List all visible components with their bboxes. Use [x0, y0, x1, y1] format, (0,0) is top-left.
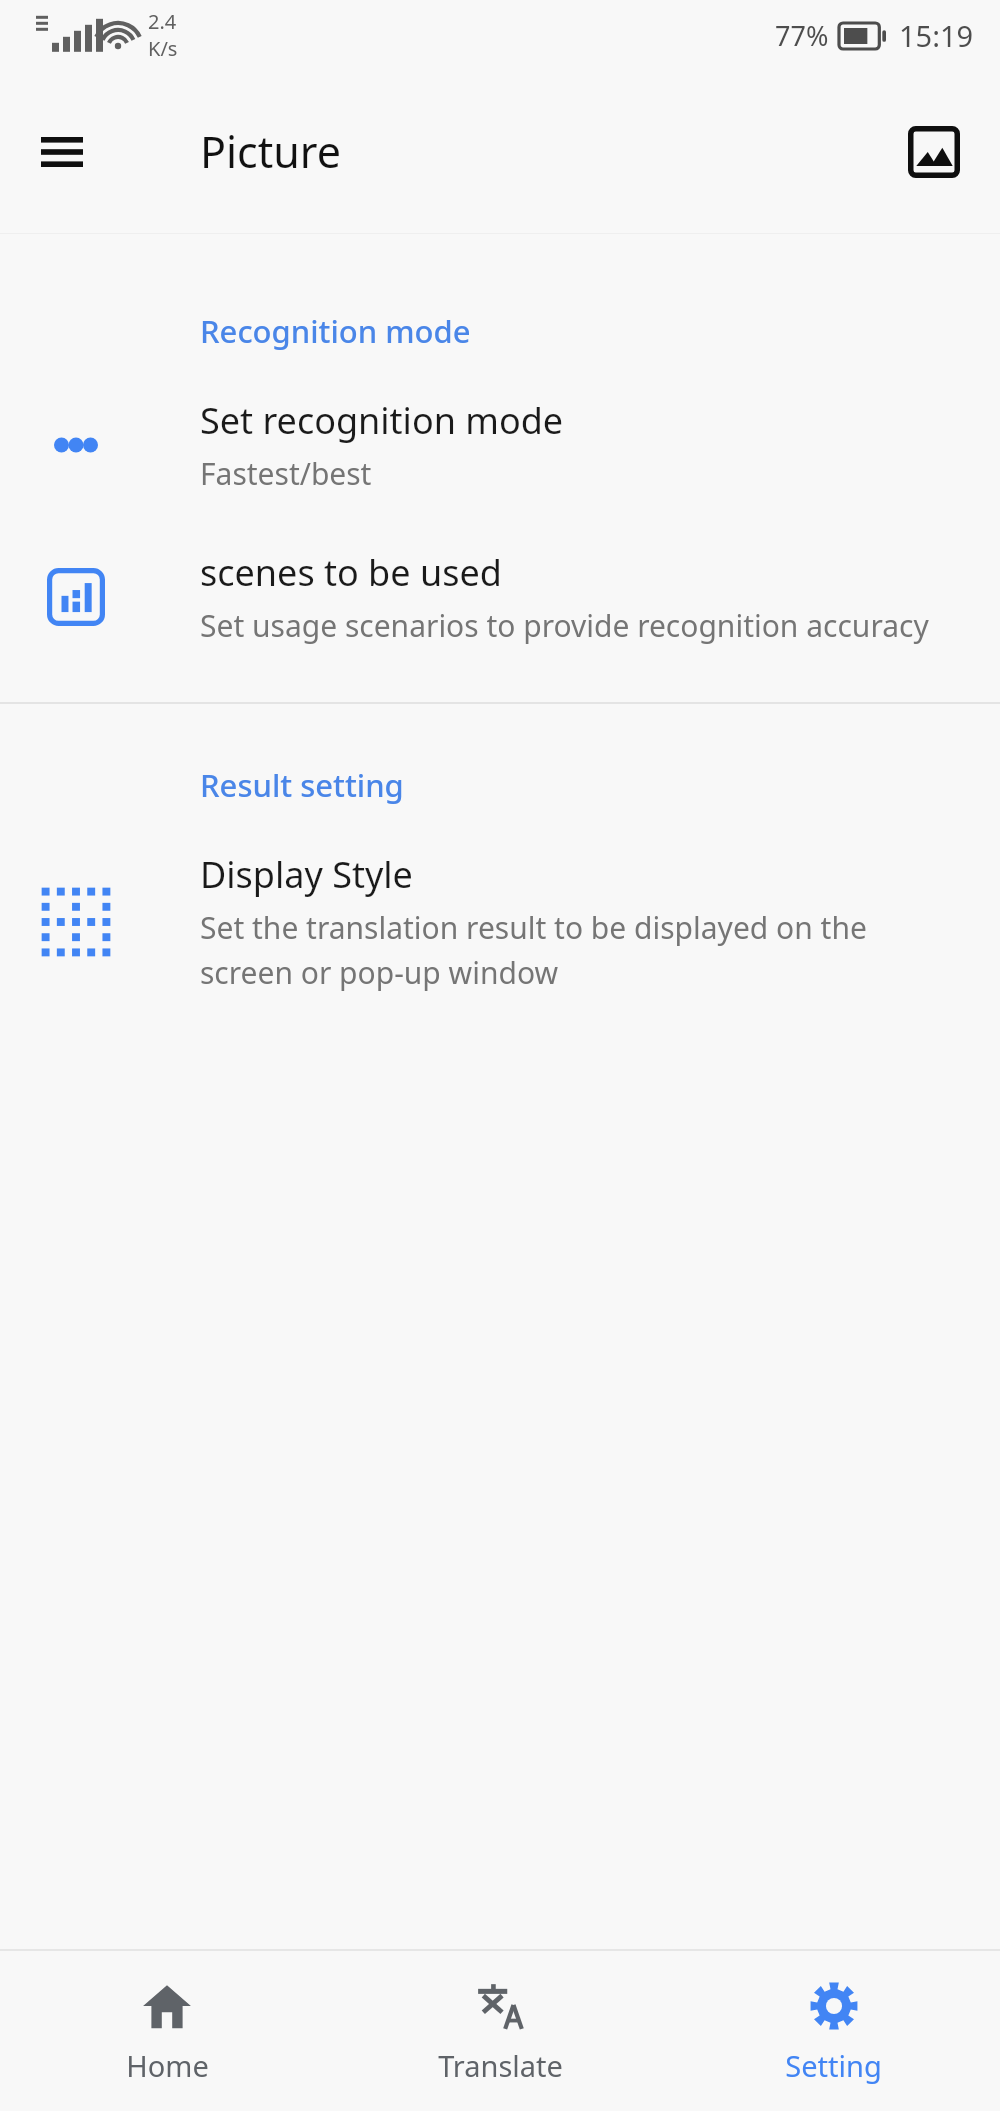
staticText: K/s [148, 35, 178, 62]
staticText: Set recognition mode [200, 396, 564, 445]
button[interactable]: Open navigation menu [14, 104, 110, 200]
staticText: Display Style [200, 850, 413, 899]
staticText: Home [126, 2046, 209, 2085]
button[interactable]: Setting [667, 1951, 1000, 2111]
staticText: scenes to be used [200, 548, 502, 597]
staticText: Translate [438, 2046, 563, 2085]
button[interactable]: Pick image [886, 104, 982, 200]
button[interactable]: Home [0, 1951, 334, 2111]
staticText: Recognition mode [200, 310, 471, 352]
staticText: 2.4 [148, 8, 177, 35]
staticText: 77% [775, 17, 829, 54]
button[interactable]: Set recognition mode [0, 396, 1000, 494]
button[interactable]: scenes to be used [0, 548, 1000, 646]
button[interactable]: Translate [334, 1951, 667, 2111]
button[interactable]: Display Style [0, 850, 1000, 993]
staticText: Setting [785, 2046, 882, 2085]
staticText: Result setting [200, 764, 404, 806]
staticText: Picture [200, 122, 341, 181]
staticText: Set usage scenarios to provide recogniti… [200, 605, 929, 646]
staticText: Set the translation result to be display… [200, 907, 952, 993]
staticText: 15:19 [899, 16, 974, 55]
staticText: Fastest/best [200, 453, 372, 494]
